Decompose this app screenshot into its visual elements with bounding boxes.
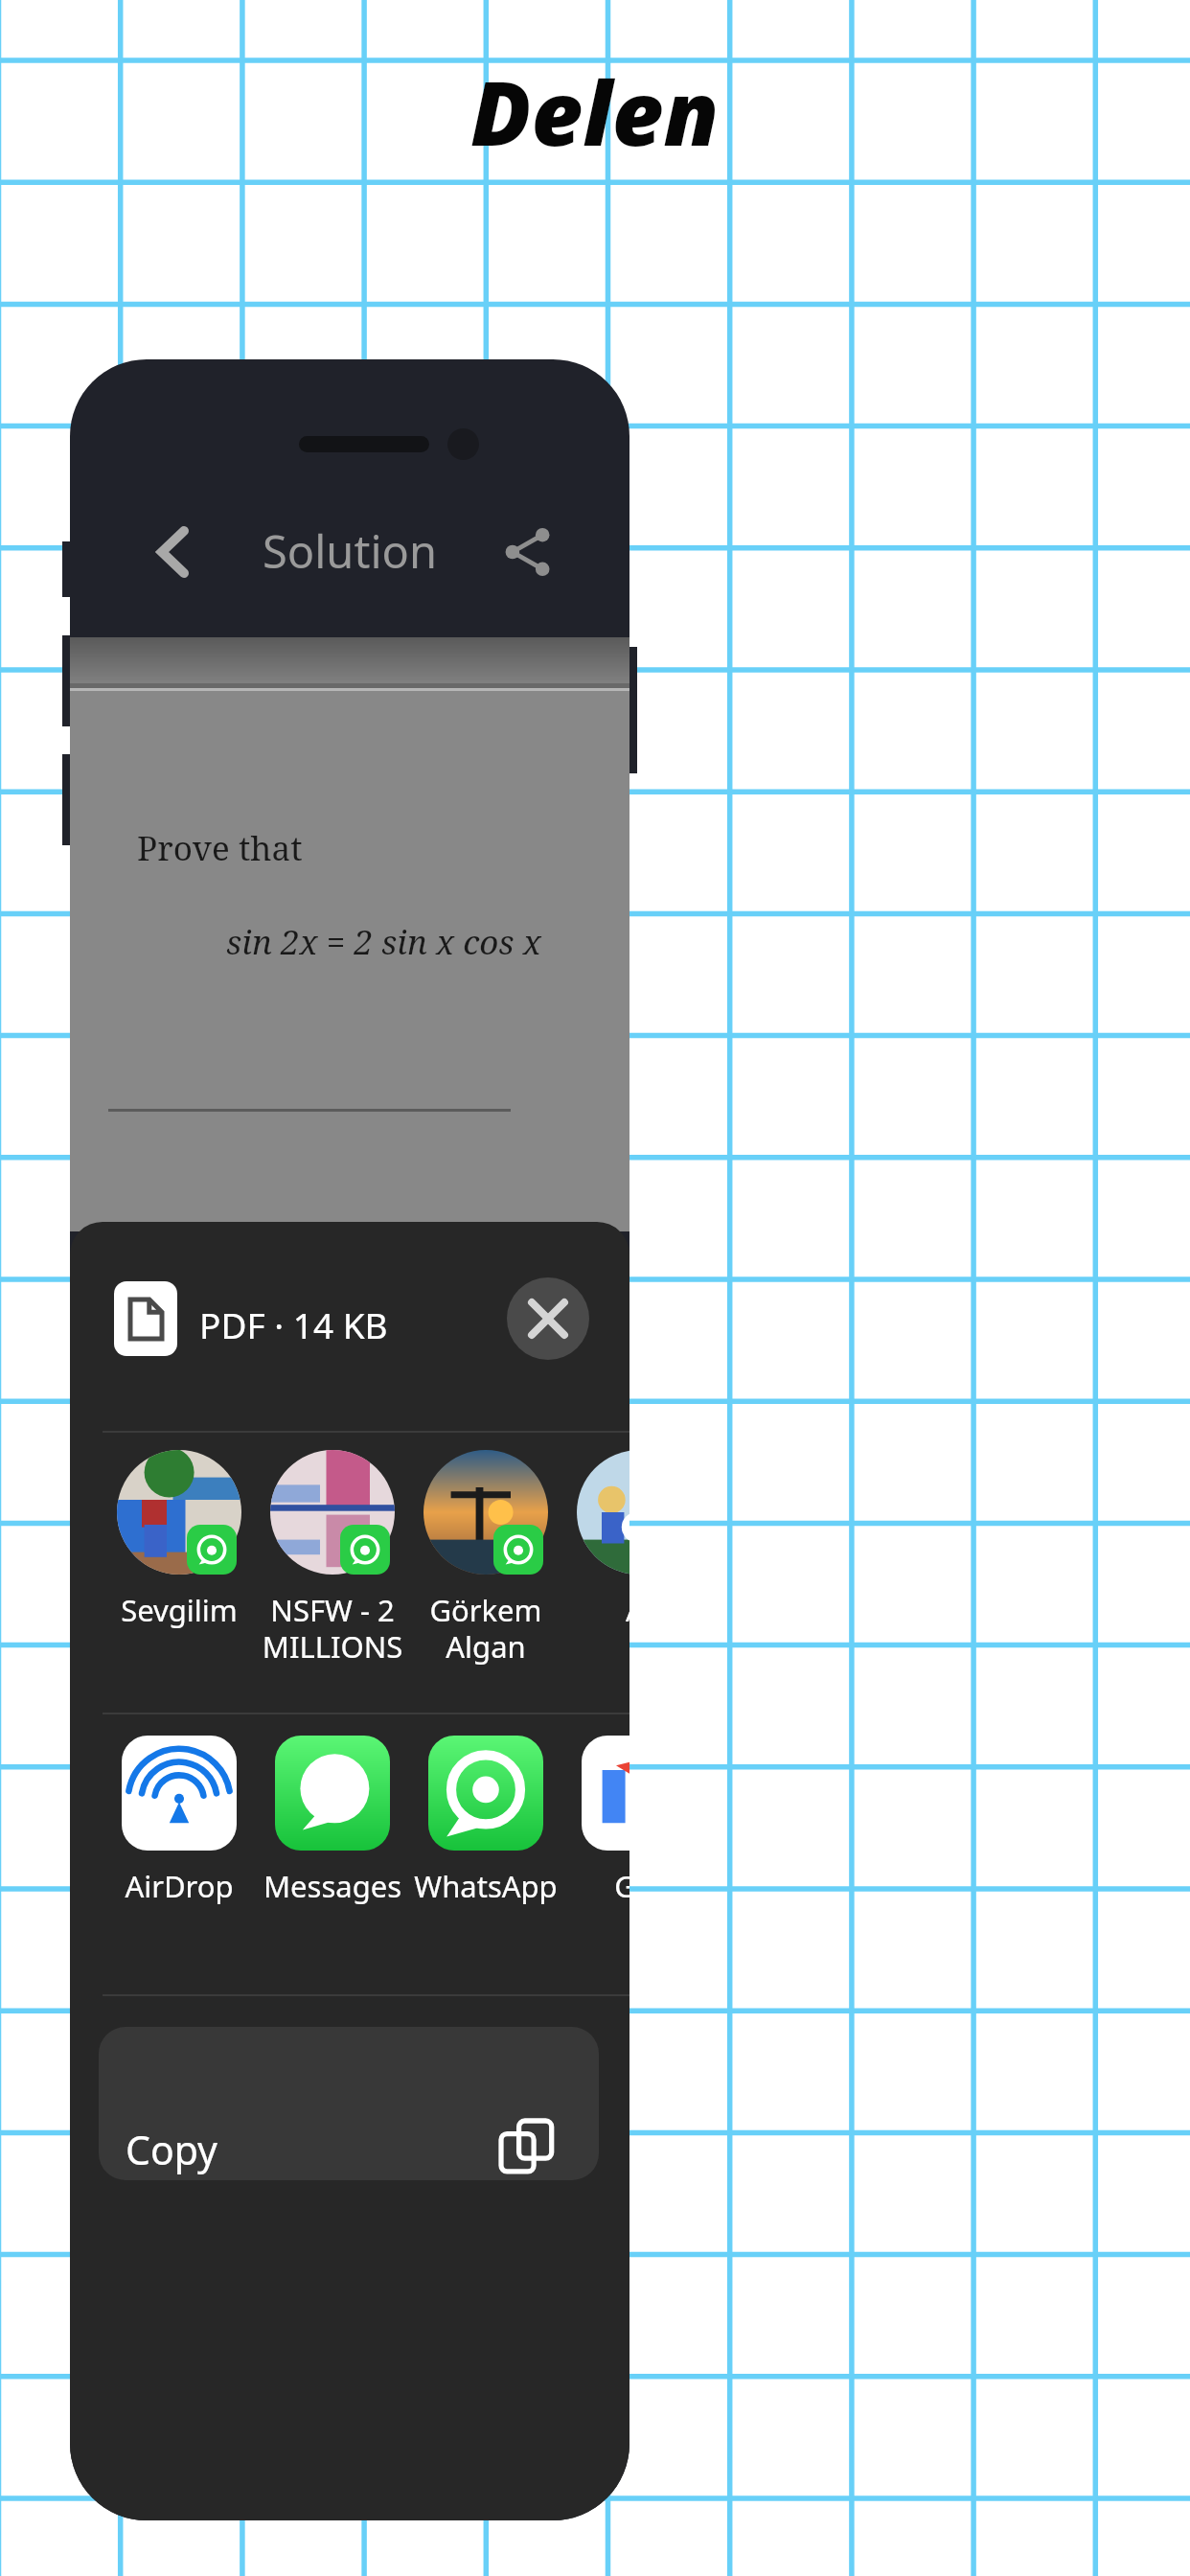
staticText: Delen <box>470 51 720 172</box>
staticText: PDF · 14 KB <box>199 1300 388 1348</box>
button[interactable]: Görkem Algan <box>409 1450 562 1690</box>
button[interactable] <box>114 1281 177 1356</box>
staticText: NSFW - 2 MILLIONS C... <box>256 1590 409 1667</box>
staticText: Görkem Algan <box>409 1590 562 1667</box>
button[interactable]: Sevgilim <box>103 1450 256 1690</box>
staticText: AirDrop <box>103 1866 256 1906</box>
button[interactable]: Copy <box>99 2027 599 2180</box>
button[interactable]: WhatsApp <box>409 1736 562 1975</box>
staticText: Solution <box>263 520 437 582</box>
button[interactable]: Messages <box>256 1736 409 1975</box>
button[interactable]: Gm <box>562 1736 629 1975</box>
button[interactable]: AirDrop <box>103 1736 256 1975</box>
staticText: Copy <box>126 2123 218 2176</box>
button[interactable]: Close <box>507 1277 589 1360</box>
staticText: Messages <box>256 1866 409 1906</box>
staticText: Sevgilim <box>103 1590 256 1630</box>
button[interactable]: NSFW - 2 MILLIONS C... <box>256 1450 409 1690</box>
button[interactable]: Share <box>490 515 564 589</box>
staticText: sin 2x = 2 sin x cos x <box>226 919 541 965</box>
staticText: WhatsApp <box>409 1866 562 1906</box>
staticText: Gm <box>562 1866 629 1906</box>
staticText: Prove that <box>137 825 303 871</box>
button[interactable]: Back <box>137 515 212 589</box>
staticText: Ai <box>562 1590 629 1630</box>
button[interactable]: Ai <box>562 1450 629 1690</box>
